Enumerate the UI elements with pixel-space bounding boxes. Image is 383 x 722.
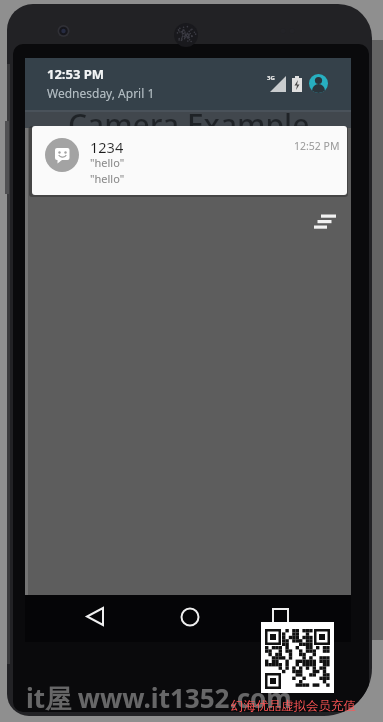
staticText: 12:53 PM — [47, 65, 105, 83]
button[interactable] — [268, 606, 294, 628]
staticText: 3G — [267, 74, 275, 82]
staticText: Wednesday, April 1 — [47, 85, 155, 101]
staticText: 幻海优品虚拟会员充值 — [231, 698, 356, 714]
button[interactable]: 1234 — [32, 126, 347, 195]
staticText: "hello" — [90, 155, 125, 170]
button[interactable] — [309, 74, 328, 93]
staticText: 1234 — [90, 137, 124, 157]
button[interactable] — [83, 606, 109, 628]
staticText: it屋 www.it1352.com — [26, 680, 292, 716]
button[interactable] — [177, 606, 203, 628]
staticText: Camera Example — [68, 104, 310, 145]
button[interactable] — [311, 210, 339, 232]
staticText: 12:52 PM — [294, 139, 340, 153]
staticText: "hello" — [90, 171, 125, 186]
